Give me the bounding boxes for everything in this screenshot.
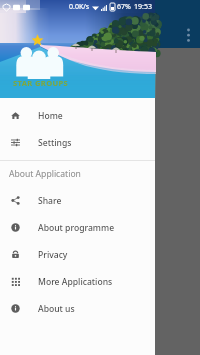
button[interactable]: Share [0, 187, 155, 214]
staticText: 67% [117, 2, 131, 12]
staticText: About us [38, 303, 75, 315]
staticText: Share [38, 195, 62, 207]
button[interactable]: Privacy [0, 241, 155, 268]
button[interactable]: Home [0, 102, 155, 129]
button[interactable]: About us [0, 295, 155, 322]
staticText: Home [38, 110, 63, 122]
staticText: About programme [38, 222, 115, 234]
staticText: 19:53 [134, 2, 152, 12]
staticText: STAR GROUPS [13, 78, 73, 88]
staticText: About Application [9, 168, 81, 180]
staticText: Privacy [38, 249, 68, 261]
staticText: More Applications [38, 276, 113, 288]
staticText: Settings [38, 137, 72, 149]
staticText: 0.0K/s [69, 2, 90, 12]
button[interactable]: More Applications [0, 268, 155, 295]
button[interactable]: About programme [0, 214, 155, 241]
button[interactable]: Settings [0, 129, 155, 156]
button[interactable]: More options [181, 22, 196, 42]
